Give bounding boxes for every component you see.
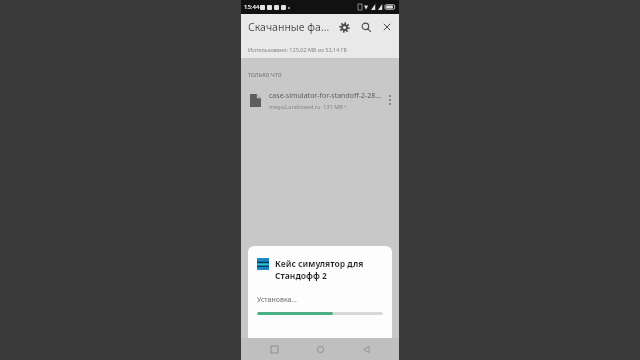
staticText: ОТМЕНА [305,337,335,347]
staticText: Установка... [257,295,297,305]
staticText: Скачанные фай... [248,20,333,34]
button[interactable]: case-simulator-for-standoff-2-28... [241,85,399,115]
staticText: только что [248,70,282,79]
staticText: Использовано: 125,02 МБ из 52,14 ГБ [248,46,347,53]
button[interactable]: Close [377,16,397,38]
button[interactable]: Settings [333,16,355,38]
staticText: 15:44 [244,3,260,11]
button[interactable]: Recents [261,338,287,360]
button[interactable]: Back [353,338,379,360]
button[interactable]: ОТМЕНА [257,331,383,353]
staticText: Кейс симулятор для Стандофф 2 [275,258,383,282]
staticText: mega2.androeed.ru 131 MB • [269,103,347,110]
button[interactable]: Home [307,338,333,360]
button[interactable]: Search [355,16,377,38]
button[interactable]: More options [381,85,399,115]
staticText: case-simulator-for-standoff-2-28... [269,91,381,101]
